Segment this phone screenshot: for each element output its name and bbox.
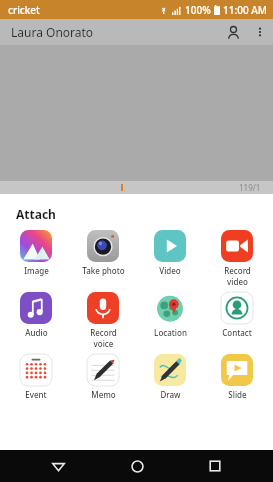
staticText: Record video [224,265,251,287]
button[interactable]: Location [139,292,201,338]
button[interactable]: Event [5,354,67,400]
button[interactable]: Memo [72,354,134,400]
button[interactable]: Take photo [72,230,134,276]
staticText: 11:00 AM [223,3,267,17]
staticText: Image [24,265,49,276]
staticText: Slide [228,389,247,400]
button[interactable]: Slide [206,354,268,400]
staticText: Take photo [82,265,125,276]
button[interactable]: More options [247,19,273,45]
staticText: Attach [16,206,56,222]
button[interactable]: Contact [206,292,268,338]
staticText: Contact [222,327,252,338]
staticText: Laura Onorato [11,24,94,40]
button[interactable]: Audio [5,292,67,338]
button[interactable]: Home [117,450,157,482]
button[interactable]: Contact info [219,19,247,45]
staticText: Audio [25,327,48,338]
button[interactable]: Back [38,450,78,482]
staticText: Video [159,265,181,276]
button[interactable]: Image [5,230,67,276]
staticText: 119/1 [239,182,261,193]
button[interactable]: Recent apps [195,450,235,482]
button[interactable]: Record video [206,230,268,287]
staticText: Draw [160,389,181,400]
staticText: Location [154,327,187,338]
button[interactable]: Video [139,230,201,276]
staticText: Record voice [90,327,117,349]
button[interactable]: Record voice [72,292,134,349]
staticText: cricket [8,3,40,17]
button[interactable]: Draw [139,354,201,400]
staticText: 100% [185,3,211,17]
staticText: Memo [91,389,116,400]
staticText: Event [25,389,47,400]
